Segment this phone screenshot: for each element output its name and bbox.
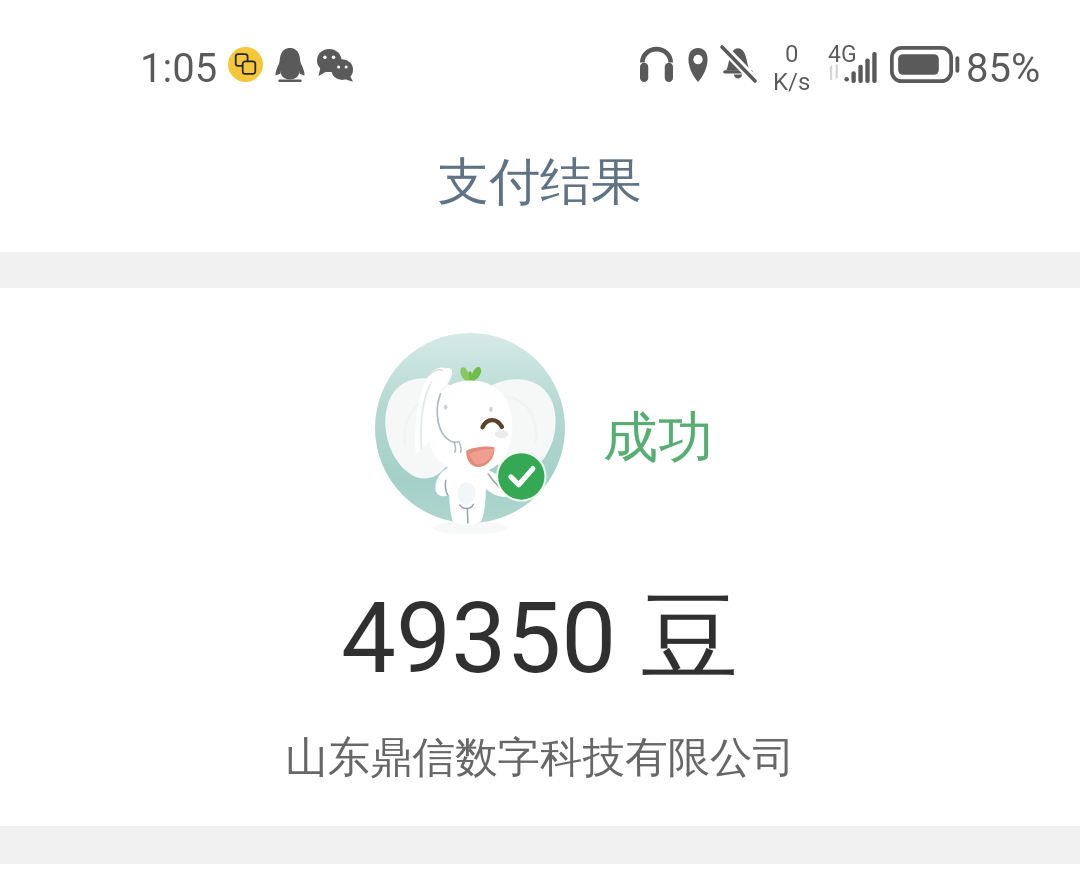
other: Silent mode — [719, 45, 757, 85]
other: QQ — [274, 47, 306, 83]
staticText: 49350 豆 — [341, 578, 739, 688]
other: Split screen — [228, 47, 263, 82]
other: Location in use — [685, 48, 711, 82]
other: Battery 85 percent — [890, 46, 960, 83]
staticText: 1:05 — [140, 45, 218, 92]
staticText: 支付结果 — [438, 150, 642, 214]
staticText: 山东鼎信数字科技有限公司 — [285, 731, 795, 785]
staticText: 4G — [828, 41, 857, 68]
other: WeChat — [317, 49, 353, 81]
staticText: 85% — [966, 45, 1041, 92]
button[interactable]: 支付结果 — [0, 140, 1080, 224]
other: Headphones connected — [640, 47, 673, 82]
other: 4G signal — [826, 46, 882, 83]
staticText: K/s — [773, 68, 811, 96]
staticText: 0 — [785, 40, 799, 68]
staticText: 成功 — [603, 403, 713, 472]
